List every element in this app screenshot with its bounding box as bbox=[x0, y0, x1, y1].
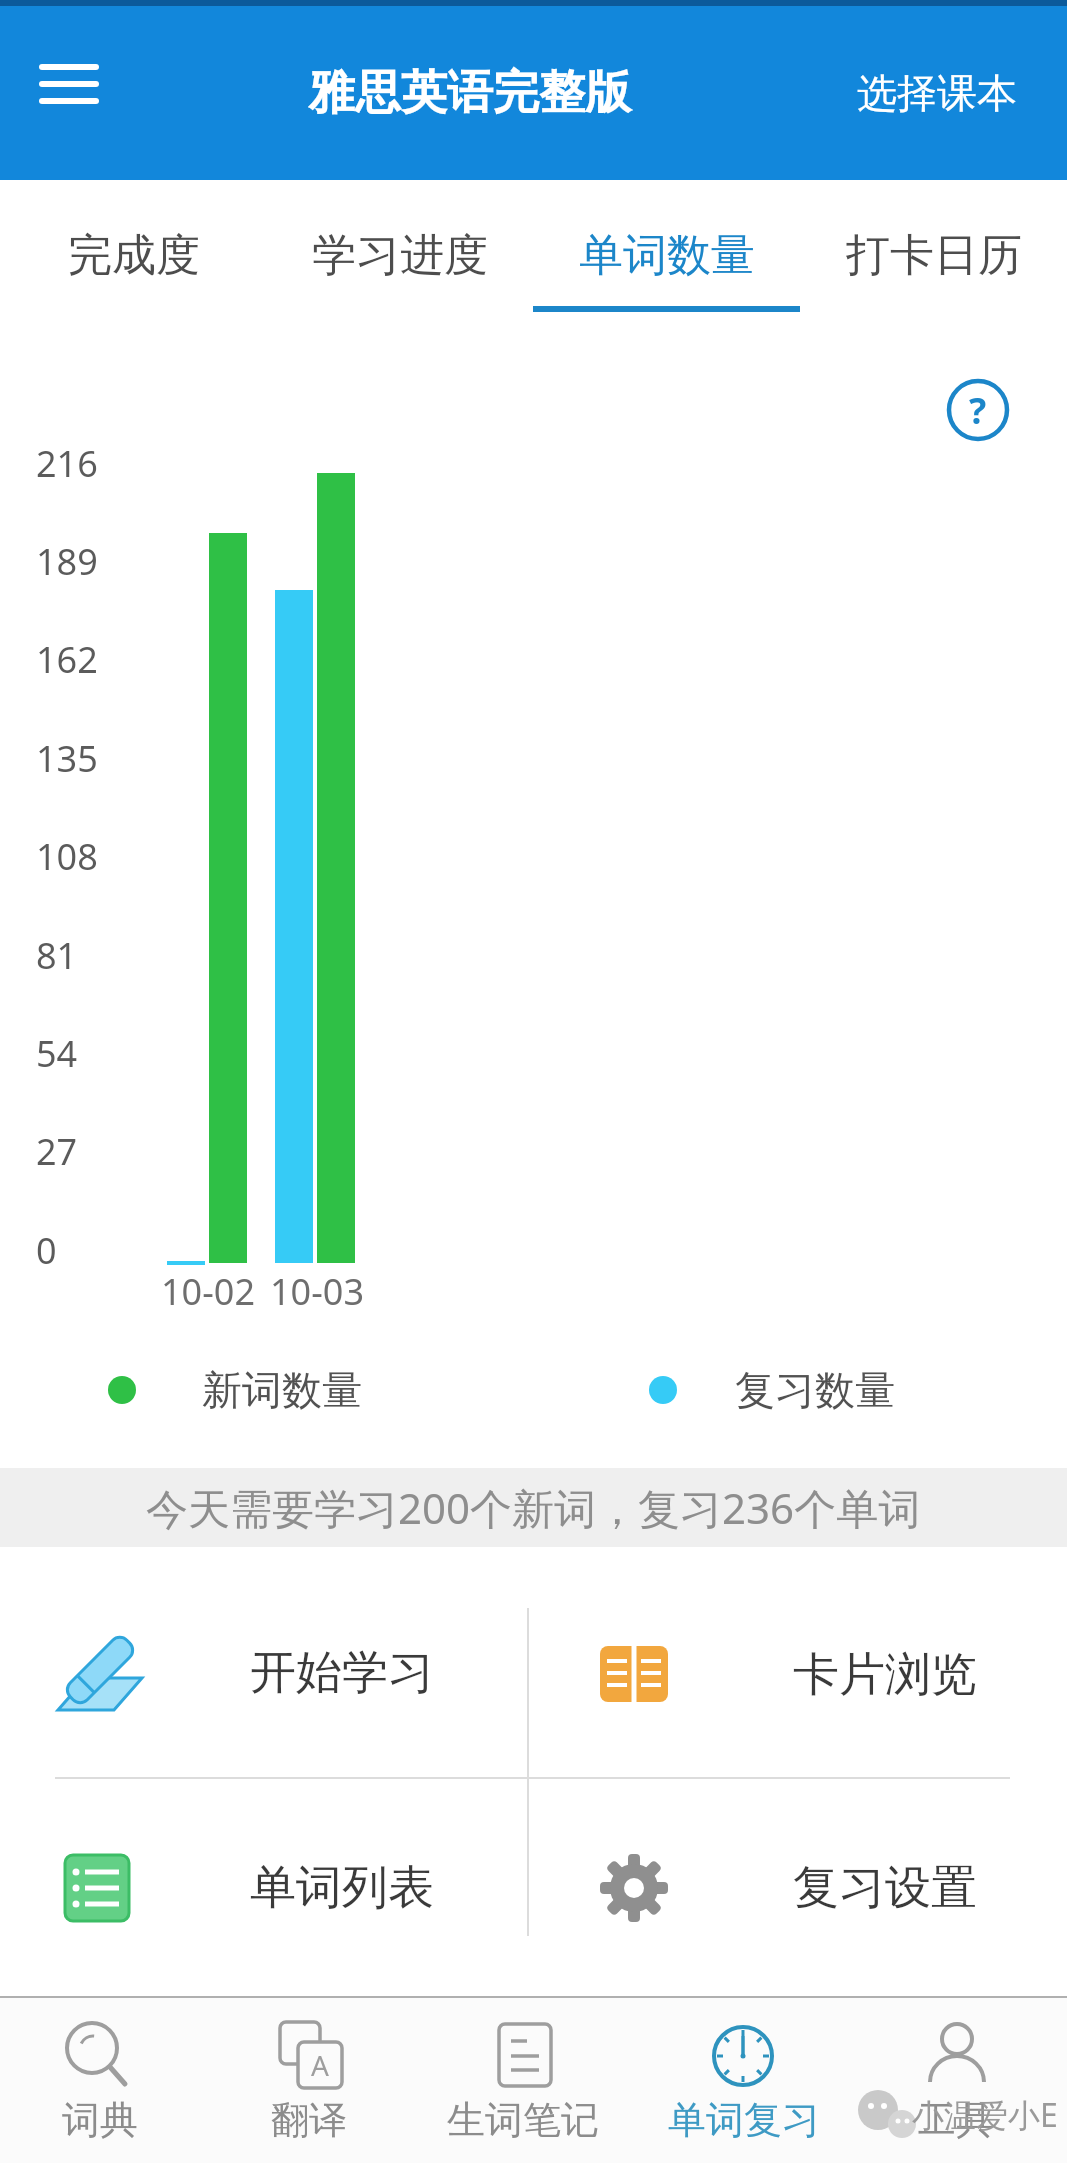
staticText: 108 bbox=[36, 832, 98, 881]
staticText: ? bbox=[969, 386, 987, 435]
staticText: 27 bbox=[36, 1127, 78, 1176]
staticText: 工具 bbox=[918, 2096, 994, 2144]
button[interactable]: 选择课本 bbox=[817, 33, 1057, 153]
button[interactable] bbox=[640, 1998, 853, 2163]
staticText: A bbox=[311, 2046, 329, 2084]
button[interactable]: ? bbox=[946, 378, 1010, 442]
staticText: 生词笔记 bbox=[447, 2096, 599, 2144]
staticText: 小温爱小E bbox=[912, 2093, 1058, 2137]
button[interactable] bbox=[527, 1547, 1067, 1778]
button[interactable] bbox=[427, 1998, 640, 2163]
button[interactable]: 完成度 bbox=[0, 180, 267, 330]
staticText: 189 bbox=[36, 537, 98, 586]
staticText: 10-03 bbox=[270, 1267, 364, 1316]
staticText: 复习设置 bbox=[793, 1859, 977, 1917]
staticText: 单词复习 bbox=[668, 2096, 820, 2144]
staticText: 10-02 bbox=[161, 1267, 255, 1316]
staticText: 54 bbox=[36, 1029, 78, 1078]
staticText: 词典 bbox=[62, 2096, 138, 2144]
staticText: 打卡日历 bbox=[846, 228, 1022, 283]
staticText: 开始学习 bbox=[250, 1644, 434, 1702]
button[interactable] bbox=[527, 1778, 1067, 1996]
staticText: 复习数量 bbox=[735, 1365, 895, 1415]
staticText: 单词列表 bbox=[250, 1859, 434, 1917]
button[interactable]: 单词数量 bbox=[533, 180, 800, 330]
staticText: 新词数量 bbox=[202, 1365, 362, 1415]
staticText: 卡片浏览 bbox=[793, 1646, 977, 1704]
staticText: 雅思英语完整版 bbox=[309, 64, 631, 122]
button[interactable] bbox=[854, 1998, 1067, 2163]
staticText: 0 bbox=[36, 1226, 57, 1275]
staticText: 162 bbox=[36, 635, 98, 684]
staticText: 今天需要学习200个新词，复习236个单词 bbox=[146, 1479, 921, 1536]
staticText: 216 bbox=[36, 439, 98, 488]
button[interactable] bbox=[0, 1998, 213, 2163]
staticText: 学习进度 bbox=[312, 228, 488, 283]
staticText: 选择课本 bbox=[857, 68, 1017, 118]
staticText: 完成度 bbox=[68, 228, 200, 283]
staticText: 单词数量 bbox=[579, 228, 755, 283]
staticText: 135 bbox=[36, 734, 98, 783]
staticText: 翻译 bbox=[271, 2096, 347, 2144]
button[interactable] bbox=[0, 1547, 527, 1778]
button[interactable]: 打卡日历 bbox=[800, 180, 1067, 330]
button[interactable] bbox=[30, 50, 110, 120]
button[interactable]: 学习进度 bbox=[266, 180, 533, 330]
staticText: 81 bbox=[36, 931, 78, 980]
button[interactable] bbox=[0, 1778, 527, 1996]
button[interactable] bbox=[213, 1998, 426, 2163]
